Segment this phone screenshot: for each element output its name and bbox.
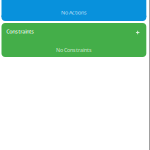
staticText: No Actions [61,9,87,16]
staticText: No Constraints [56,46,92,54]
button[interactable]: Add Constraint [136,29,140,33]
staticText: Constraints [6,28,34,35]
button[interactable]: No Actions [1,0,146,21]
button[interactable]: Constraints [1,23,146,57]
